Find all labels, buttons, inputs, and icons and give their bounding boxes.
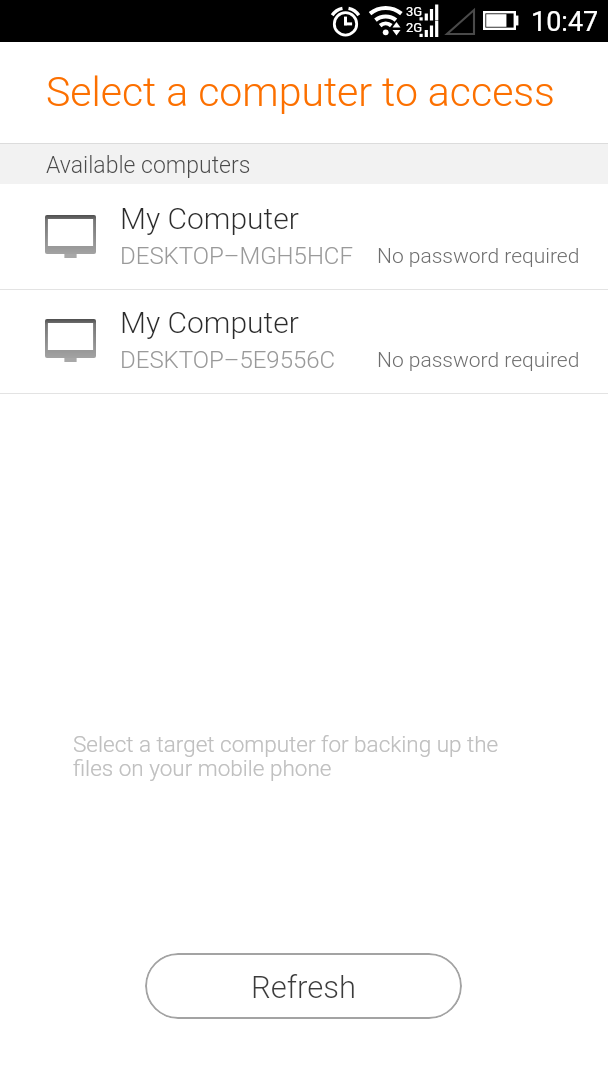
button[interactable]: Refresh [145,953,462,1019]
other: No SIM signal [446,9,475,35]
staticText: 2G [406,20,423,35]
other: Alarm set [332,4,360,38]
other: Battery [483,11,519,30]
staticText: 3G [406,4,423,19]
staticText: My Computer [120,201,299,236]
button[interactable]: My Computer [0,290,608,393]
other: Wi-Fi [369,2,404,36]
staticText: 10:47 [531,6,599,38]
staticText: Select a computer to access [46,68,555,116]
staticText: Select a target computer for backing up … [73,731,499,781]
other: Mobile signal [406,5,435,38]
staticText: My Computer [120,305,299,340]
staticText: DESKTOP–MGH5HCF [120,242,353,270]
staticText: No password required [377,244,580,269]
staticText: Refresh [251,969,356,1005]
staticText: No password required [377,348,580,373]
staticText: DESKTOP–5E9556C [120,346,336,374]
staticText: Available computers [46,152,251,179]
button[interactable]: My Computer [0,186,608,289]
